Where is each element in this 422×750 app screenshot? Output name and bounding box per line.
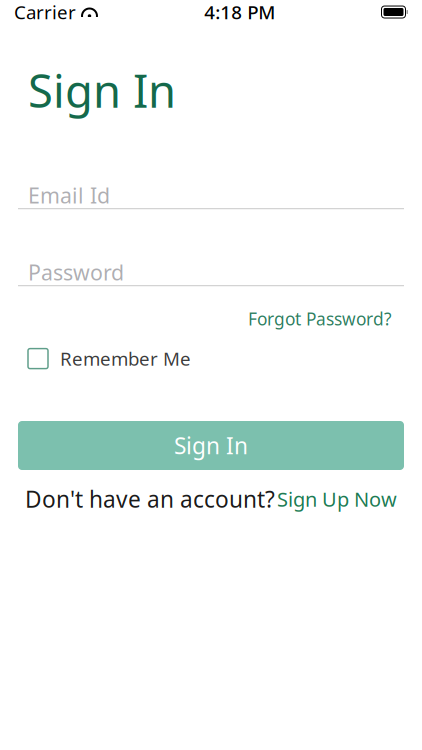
staticText: Password xyxy=(28,258,124,286)
staticText: Remember Me xyxy=(60,346,191,371)
staticText: Email Id xyxy=(28,181,110,209)
staticText: Don't have an account? xyxy=(25,484,275,514)
button[interactable]: Forgot Password? xyxy=(248,303,392,334)
staticText: 4:18 PM xyxy=(204,0,275,24)
staticText: Forgot Password? xyxy=(248,307,392,330)
button[interactable]: Remember Me xyxy=(28,346,191,371)
staticText: Sign In xyxy=(28,60,176,120)
staticText: Sign In xyxy=(174,430,248,461)
button[interactable]: Sign Up Now xyxy=(277,486,397,512)
staticText: Sign Up Now xyxy=(277,486,397,512)
button[interactable]: Sign In xyxy=(18,421,404,470)
staticText: Carrier xyxy=(14,0,76,24)
